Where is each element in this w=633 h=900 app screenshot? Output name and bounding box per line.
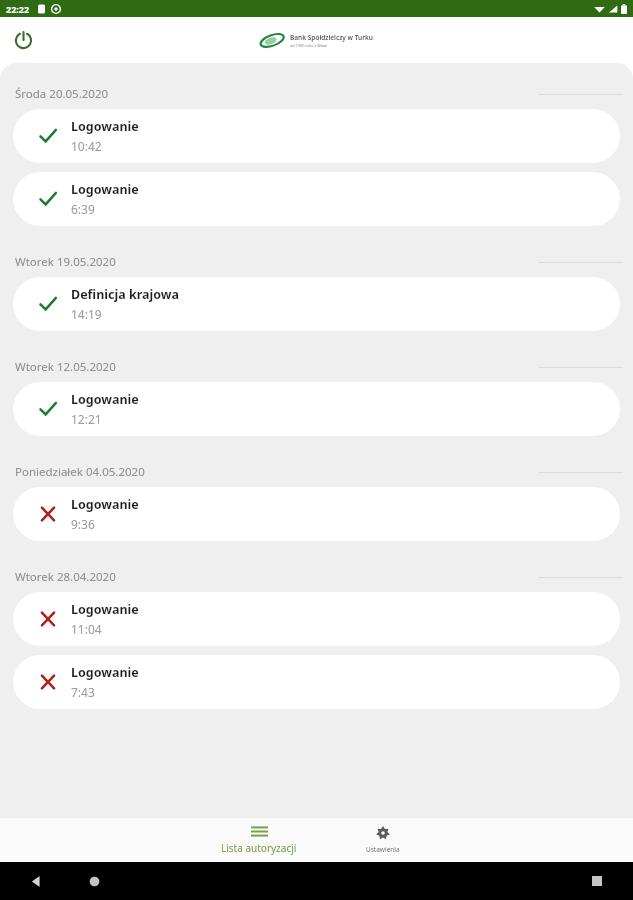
button[interactable]: Logowanie <box>13 592 620 646</box>
button[interactable]: Ustawienia <box>335 818 431 862</box>
staticText: 7:43 <box>71 684 95 700</box>
staticText: Wtorek 12.05.2020 <box>15 359 116 375</box>
button[interactable]: Recent apps <box>583 867 611 895</box>
button[interactable]: Back <box>22 867 50 895</box>
button[interactable]: Home <box>80 867 108 895</box>
button[interactable]: Logowanie <box>13 655 620 709</box>
button[interactable]: Logowanie <box>13 172 620 226</box>
staticText: Lista autoryzacji <box>221 841 297 855</box>
staticText: Logowanie <box>71 391 139 408</box>
staticText: 12:21 <box>71 411 102 427</box>
staticText: od 1900 roku z Wami <box>290 43 328 48</box>
staticText: Poniedziałek 04.05.2020 <box>15 464 145 480</box>
staticText: Logowanie <box>71 664 139 681</box>
staticText: Logowanie <box>71 496 139 513</box>
staticText: 9:36 <box>71 516 95 532</box>
staticText: Definicja krajowa <box>71 286 180 303</box>
staticText: Logowanie <box>71 181 139 198</box>
staticText: 11:04 <box>71 621 102 637</box>
staticText: 22:22 <box>6 3 30 15</box>
staticText: 6:39 <box>71 201 95 217</box>
button[interactable]: Definicja krajowa <box>13 277 620 331</box>
button[interactable]: Logowanie <box>13 487 620 541</box>
staticText: Bank Spółdzielczy w Turku <box>290 33 374 42</box>
button[interactable]: Lista autoryzacji <box>193 818 325 862</box>
staticText: 14:19 <box>71 306 102 322</box>
button[interactable]: Logowanie <box>13 382 620 436</box>
staticText: Ustawienia <box>366 845 400 854</box>
staticText: Wtorek 28.04.2020 <box>15 569 116 585</box>
staticText: Wtorek 19.05.2020 <box>15 254 116 270</box>
staticText: 10:42 <box>71 138 102 154</box>
staticText: Środa 20.05.2020 <box>15 86 109 102</box>
staticText: Logowanie <box>71 118 139 135</box>
button[interactable]: Logowanie <box>13 109 620 163</box>
staticText: Logowanie <box>71 601 139 618</box>
button[interactable]: Wyloguj <box>7 24 39 56</box>
